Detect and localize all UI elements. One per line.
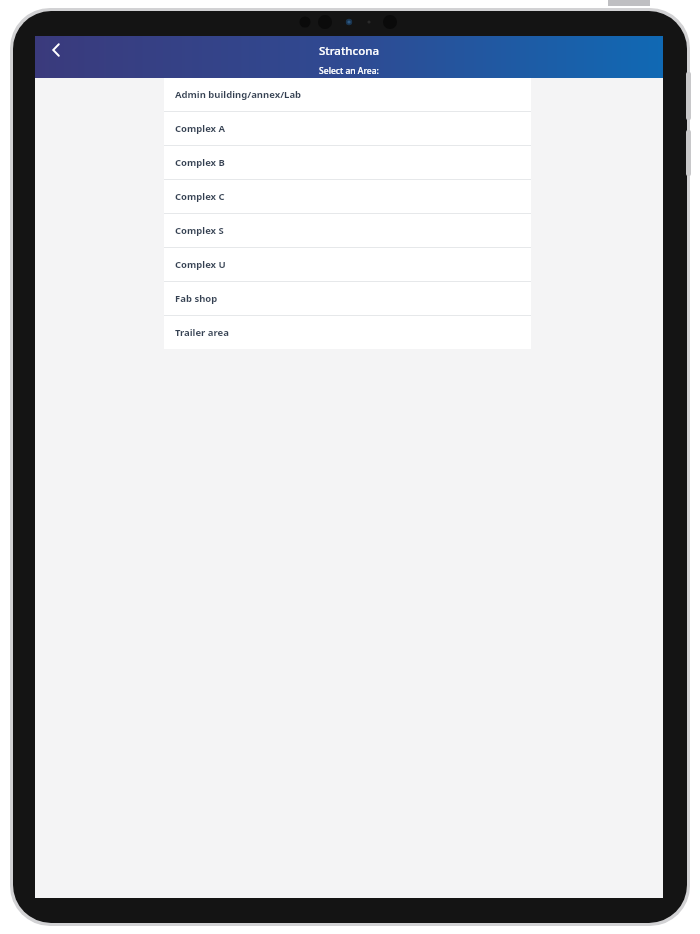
staticText: Complex U xyxy=(175,258,226,271)
button[interactable]: Complex C xyxy=(164,180,531,213)
button[interactable]: Back xyxy=(39,36,73,64)
staticText: Admin building/annex/Lab xyxy=(175,88,302,101)
button[interactable]: Trailer area xyxy=(164,316,531,349)
button[interactable]: Complex S xyxy=(164,214,531,247)
button[interactable]: Complex A xyxy=(164,112,531,145)
staticText: Complex S xyxy=(175,224,224,237)
staticText: Select an Area: xyxy=(35,65,663,77)
staticText: Complex C xyxy=(175,190,225,203)
button[interactable]: Admin building/annex/Lab xyxy=(164,78,531,111)
staticText: Complex B xyxy=(175,156,225,169)
staticText: Fab shop xyxy=(175,292,218,305)
staticText: Complex A xyxy=(175,122,226,135)
staticText: Trailer area xyxy=(175,326,229,339)
button[interactable]: Complex B xyxy=(164,146,531,179)
button[interactable]: Complex U xyxy=(164,248,531,281)
staticText: Strathcona xyxy=(35,43,663,59)
button[interactable]: Fab shop xyxy=(164,282,531,315)
